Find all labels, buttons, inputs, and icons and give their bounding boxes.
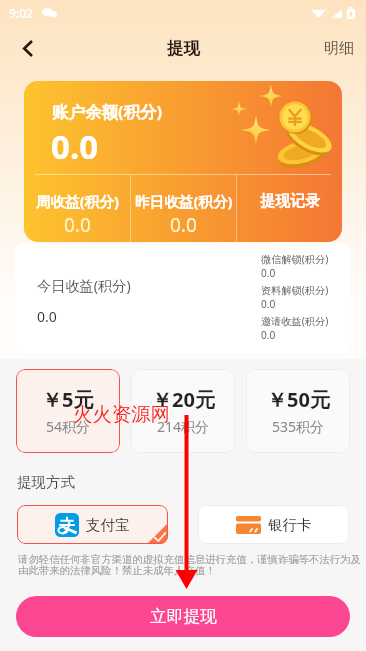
button[interactable]: Back	[8, 28, 48, 68]
staticText: 0.0	[64, 212, 91, 238]
staticText: 0.0	[37, 307, 57, 326]
staticText: 火火资源网	[73, 402, 170, 426]
staticText: 提现	[167, 38, 200, 59]
button[interactable]: 支付宝	[17, 505, 168, 544]
staticText: 立即提现	[150, 606, 217, 627]
staticText: 请勿轻信任何非官方渠道的虚拟充值信息进行充值，谨慎诈骗等不法行为及由此带来的法律…	[18, 553, 362, 578]
staticText: 微信解锁(积分)	[261, 252, 329, 266]
staticText: ￥50元	[267, 386, 330, 413]
staticText: 银行卡	[268, 516, 312, 534]
button[interactable]: 周收益(积分)	[24, 175, 130, 242]
staticText: 0.0	[51, 124, 99, 169]
staticText: 提现方式	[17, 473, 75, 491]
staticText: 明细	[324, 39, 354, 58]
staticText: ￥5元	[42, 386, 94, 413]
staticText: 54积分	[46, 417, 91, 436]
staticText: 支付宝	[86, 516, 130, 534]
staticText: 0.0	[170, 212, 197, 238]
staticText: 邀请收益(积分)	[261, 314, 329, 328]
staticText: 今日收益(积分)	[37, 276, 131, 295]
button[interactable]: ￥50元	[246, 369, 350, 453]
button[interactable]: 昨日收益(积分)	[131, 175, 236, 242]
button[interactable]: 立即提现	[16, 596, 350, 637]
staticText: 535积分	[272, 417, 325, 436]
button[interactable]: 银行卡	[198, 505, 349, 544]
staticText: 9:02	[9, 5, 33, 21]
staticText: 0.0	[261, 266, 276, 280]
staticText: 周收益(积分)	[36, 191, 119, 211]
staticText: 账户余额(积分)	[52, 100, 163, 123]
staticText: 资料解锁(积分)	[261, 283, 329, 297]
staticText: 昨日收益(积分)	[135, 191, 233, 211]
staticText: 提现记录	[260, 192, 320, 211]
button[interactable]: ￥5元	[16, 369, 120, 453]
staticText: 214积分	[157, 417, 210, 436]
staticText: 0.0	[261, 297, 276, 311]
staticText: ￥20元	[152, 386, 215, 413]
button[interactable]: 提现记录	[237, 175, 342, 242]
button[interactable]: 明细	[308, 28, 366, 68]
button[interactable]: ￥20元	[131, 369, 235, 453]
staticText: 0.0	[261, 328, 276, 342]
